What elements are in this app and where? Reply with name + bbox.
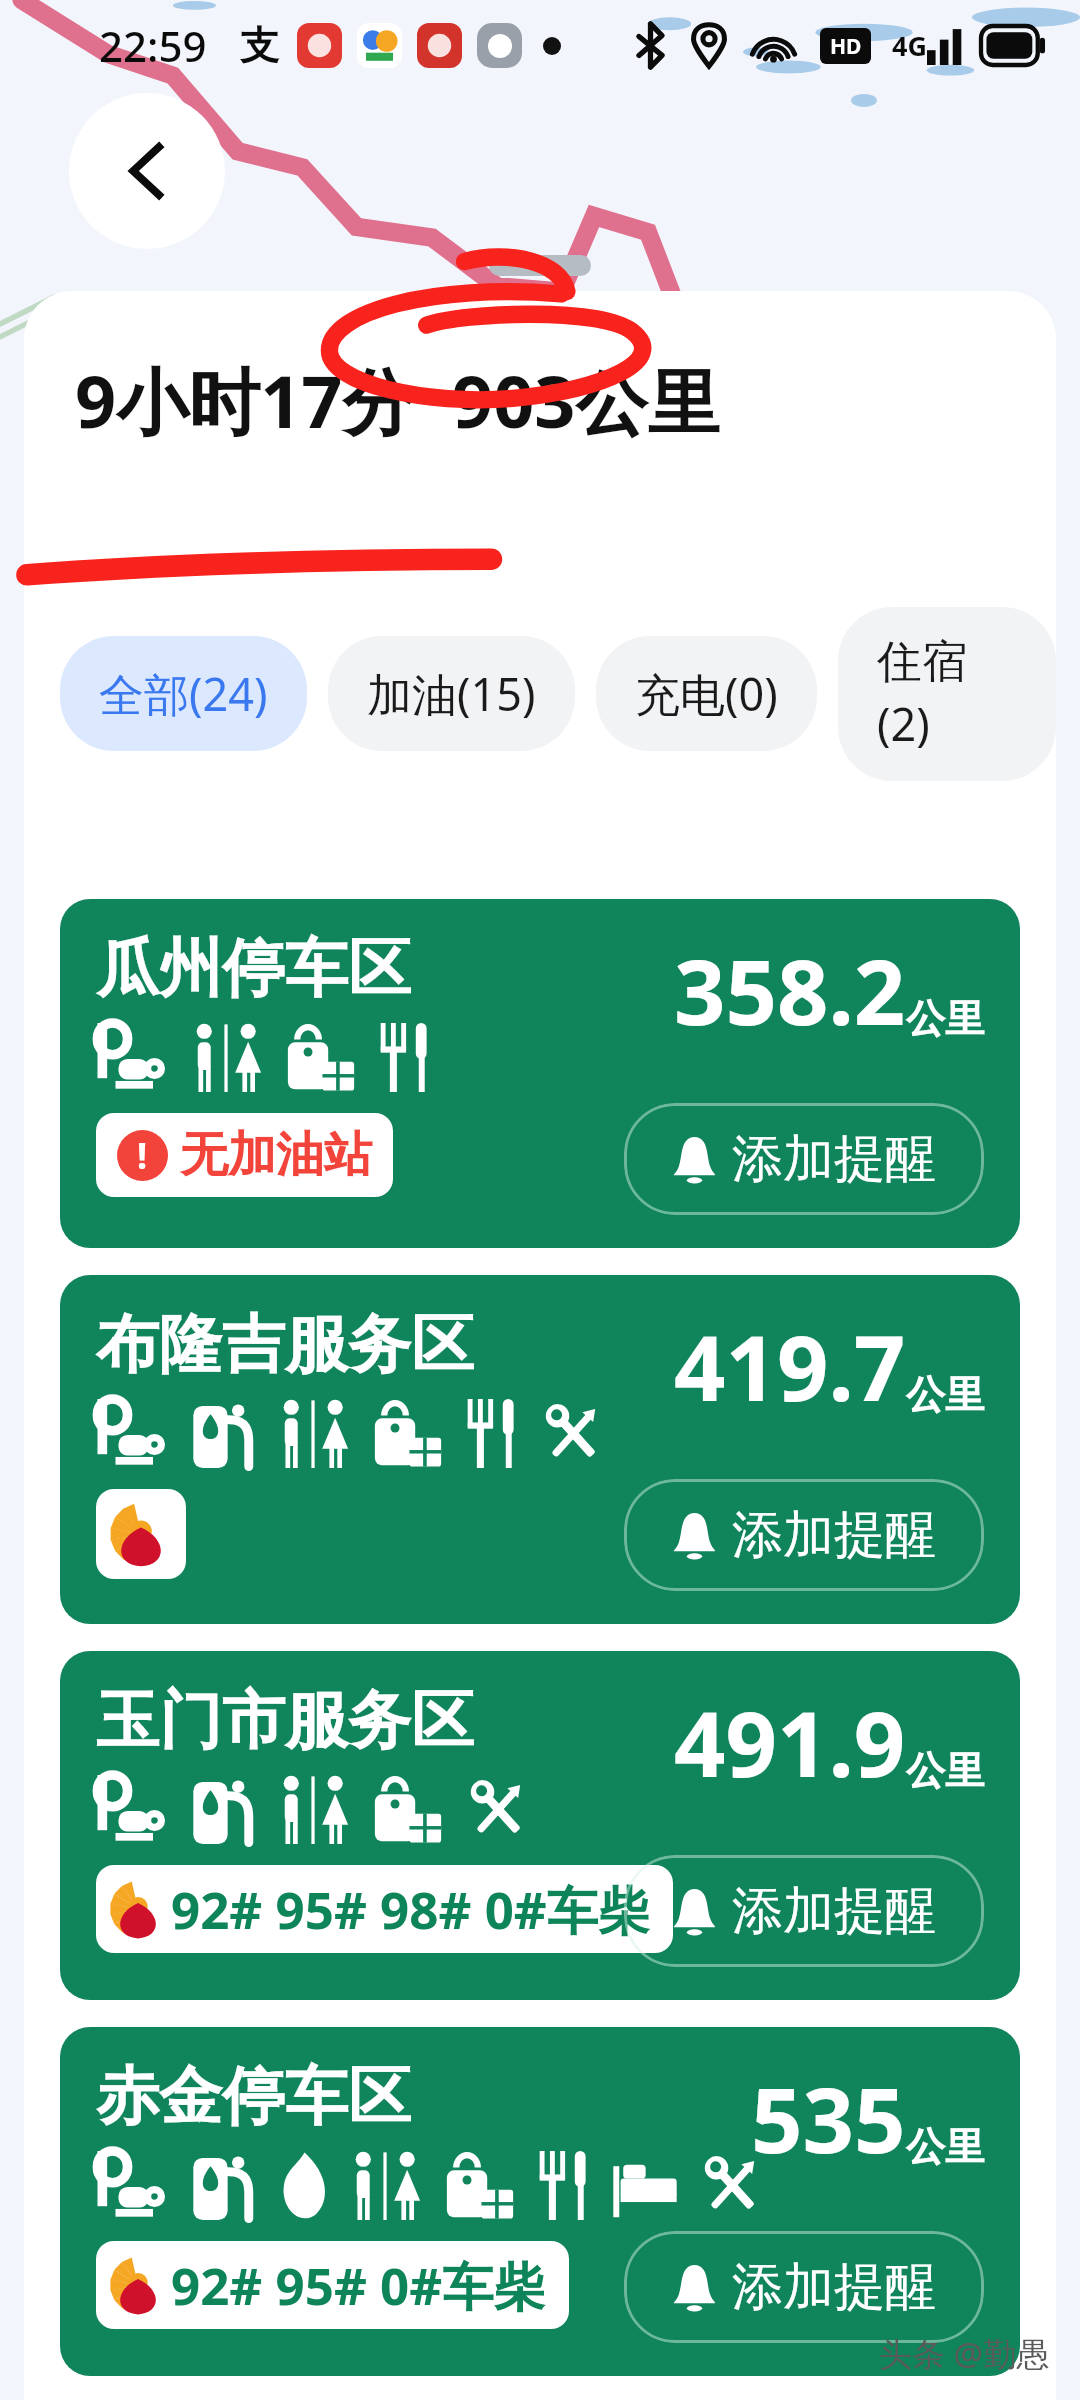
staticText: 491.9 [674,1681,906,1804]
button[interactable]: 瓜州停车区 [60,899,1020,1248]
staticText: 加油(15) [367,663,536,724]
staticText: 358.2 [674,929,906,1052]
staticText: 支 [240,21,279,70]
staticText: HD [830,32,862,61]
staticText: 公里 [906,2122,984,2171]
button[interactable]: 全部(24) [60,636,307,751]
staticText: 住宿(2) [877,634,1017,754]
staticText: 92# 95# 0#车柴 [171,2250,545,2320]
staticText: 公里 [906,994,984,1043]
staticText: 4G [892,27,927,64]
staticText: 添加提醒 [732,2255,936,2319]
staticText: 布隆吉服务区 [96,1305,474,1384]
staticText: 添加提醒 [732,1503,936,1567]
staticText: 9小时17分 903公里 [75,351,720,449]
button[interactable]: 添加提醒 [624,1103,984,1215]
staticText: 419.7 [674,1305,906,1428]
staticText: 添加提醒 [732,1127,936,1191]
button[interactable]: 布隆吉服务区 [60,1275,1020,1624]
staticText: 瓜州停车区 [96,929,411,1008]
staticText: 无加油站 [180,1125,372,1185]
staticText: ! [137,1131,148,1180]
staticText: 22:59 [99,17,207,74]
button[interactable]: 添加提醒 [624,2231,984,2343]
staticText: 535 [751,2057,906,2180]
button[interactable]: 充电(0) [596,636,817,751]
staticText: 赤金停车区 [96,2057,411,2136]
button[interactable]: Back [69,93,225,249]
staticText: 玉门市服务区 [96,1681,474,1760]
button[interactable]: 添加提醒 [624,1479,984,1591]
button[interactable]: 住宿(2) [838,607,1056,781]
staticText: 公里 [906,1746,984,1795]
staticText: 充电(0) [635,663,778,724]
button[interactable]: 玉门市服务区 [60,1651,1020,2000]
staticText: 添加提醒 [732,1879,936,1943]
staticText: 头条 @勤愚 [879,2331,1050,2376]
staticText: 全部(24) [99,663,268,724]
button[interactable]: 赤金停车区 [60,2027,1020,2376]
staticText: 92# 95# 98# 0#车柴 [171,1874,649,1944]
button[interactable]: 添加提醒 [624,1855,984,1967]
button[interactable]: 加油(15) [328,636,575,751]
staticText: 公里 [906,1370,984,1419]
